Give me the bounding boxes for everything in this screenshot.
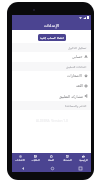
staticText: الإعدادات	[44, 23, 59, 27]
staticText: مشاركة التطبيق	[59, 94, 83, 99]
staticText: الاشعارات	[67, 74, 83, 78]
button[interactable]: Back	[20, 165, 26, 171]
staticText: اعدادات التطبيق	[66, 65, 87, 69]
staticText: الطلبات	[31, 159, 40, 162]
button[interactable]: انشاء حساب جديد	[38, 34, 66, 41]
staticText: السلة	[48, 159, 54, 162]
button[interactable]: الاشعارات	[12, 71, 91, 81]
staticText: المفضلة	[63, 159, 72, 162]
button[interactable]: Recent apps	[77, 165, 83, 171]
button[interactable]: مشاركة التطبيق	[12, 91, 91, 101]
staticText: تسجيل الدخول	[68, 46, 87, 50]
button[interactable]: الرئيسية	[75, 153, 91, 164]
staticText: الاعدادات	[15, 159, 25, 162]
button[interactable]: السلة	[43, 153, 59, 164]
staticText: ALDEERA Version 1.0	[36, 119, 68, 123]
staticText: الدعم والمساعدة	[65, 104, 87, 108]
button[interactable]: المفضلة	[59, 153, 75, 164]
button[interactable]: حسابي	[12, 52, 91, 62]
button[interactable]: الاعدادات	[12, 153, 27, 164]
button[interactable]: Home	[49, 165, 55, 171]
staticText: الرئيسية	[79, 159, 88, 162]
button[interactable]: الطلبات	[27, 153, 43, 164]
staticText: انشاء حساب جديد	[40, 36, 64, 40]
button[interactable]: اللغة	[12, 81, 91, 91]
staticText: اللغة	[76, 84, 83, 88]
staticText: حسابي	[72, 55, 83, 59]
